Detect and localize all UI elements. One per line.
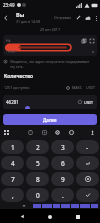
button[interactable]: На [3, 35, 97, 56]
button[interactable]: Scan QR code [89, 38, 94, 43]
button[interactable]: 46281 [3, 95, 97, 109]
button[interactable]: 1 [1, 140, 24, 154]
button[interactable]: Recents [71, 210, 84, 223]
button[interactable]: 2 [26, 140, 49, 154]
button[interactable]: Edit [74, 13, 83, 22]
staticText: Убедитесь, что адрес получателя поддержи… [10, 59, 94, 69]
button[interactable]: - [76, 140, 99, 154]
button[interactable]: Emoji [66, 127, 77, 138]
button[interactable]: Paste [81, 38, 86, 43]
staticText: Вы [16, 11, 25, 18]
button[interactable]: 3 [51, 140, 74, 154]
staticText: 5 [36, 159, 40, 168]
button[interactable]: Back [16, 210, 29, 223]
staticText: 3 [61, 143, 65, 152]
button[interactable]: . [51, 188, 74, 202]
button[interactable] [76, 156, 99, 170]
button[interactable]: Back [0, 12, 12, 24]
staticText: На [6, 38, 11, 43]
button[interactable]: 8 [26, 172, 49, 186]
staticText: 1257 доступно [4, 85, 30, 90]
staticText: 2 [36, 143, 40, 152]
staticText: Отправил [54, 15, 72, 20]
staticText: 4 [11, 159, 15, 168]
button[interactable] [76, 172, 99, 186]
staticText: 46281 [6, 99, 19, 105]
button[interactable]: 9 [51, 172, 74, 186]
button[interactable]: More options [92, 14, 100, 22]
button[interactable]: 4 [1, 156, 24, 170]
button[interactable]: Settings [52, 127, 63, 138]
staticText: . [62, 191, 64, 200]
button[interactable]: Clipboard [25, 127, 36, 138]
staticText: USDT [84, 100, 94, 105]
button[interactable]: Sticker [39, 127, 50, 138]
staticText: TRC20 [6, 50, 16, 54]
button[interactable]: Home [43, 210, 56, 223]
staticText: 9 [61, 175, 65, 184]
staticText: 23:49 [3, 2, 15, 8]
button[interactable]: 7 [1, 172, 24, 186]
button[interactable]: Apps [1, 127, 12, 138]
button[interactable]: Cloud [83, 13, 92, 22]
button[interactable]: Voice input [87, 127, 98, 138]
staticText: Количество [4, 73, 34, 80]
staticText: , [12, 191, 14, 200]
button[interactable]: Далее [3, 114, 97, 125]
button[interactable]: 5 [26, 156, 49, 170]
staticText: 31 дек в 14:08 [16, 19, 41, 24]
button[interactable]: 0 [26, 188, 49, 202]
button[interactable] [76, 188, 99, 202]
staticText: 1 [11, 143, 15, 152]
staticText: 6 [61, 159, 65, 168]
staticText: Далее [43, 117, 57, 123]
staticText: 29 окт 2017 [0, 27, 100, 32]
staticText: 7 [11, 175, 15, 184]
button[interactable]: , [1, 188, 24, 202]
staticText: МАКС [72, 85, 83, 90]
staticText: 0 [36, 191, 40, 200]
staticText: - [86, 143, 89, 152]
staticText: 8 [36, 175, 40, 184]
button[interactable]: 6 [51, 156, 74, 170]
staticText: USDT [86, 85, 96, 90]
button[interactable]: Hide keyboard [20, 203, 27, 209]
